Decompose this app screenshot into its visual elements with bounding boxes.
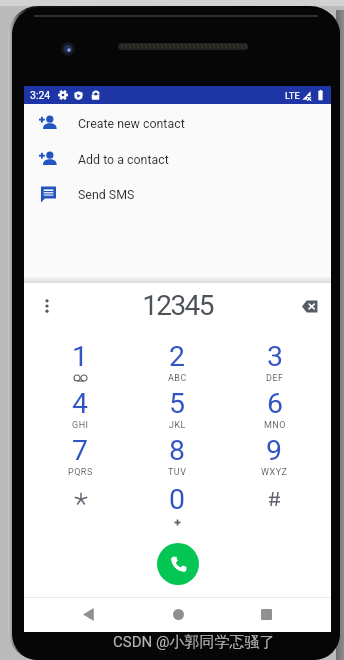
staticText: WXYZ <box>261 467 288 478</box>
staticText: ABC <box>168 373 187 384</box>
staticText: 3 <box>267 340 284 373</box>
button[interactable]: Backspace <box>290 287 328 325</box>
staticText: 1 <box>72 340 89 373</box>
staticText: Add to a contact <box>78 152 169 167</box>
staticText: PQRS <box>68 467 93 478</box>
button[interactable]: 0 <box>129 483 226 527</box>
button[interactable]: Recents <box>246 597 286 632</box>
button[interactable]: Call <box>157 543 199 585</box>
staticText: TUV <box>168 467 187 478</box>
button[interactable]: Send SMS <box>24 182 331 206</box>
button[interactable]: 6 <box>226 387 323 431</box>
button[interactable]: Create new contact <box>24 111 331 135</box>
button[interactable]: 7 <box>32 434 129 478</box>
staticText: 2 <box>169 340 186 373</box>
staticText: 7 <box>72 434 89 467</box>
staticText: 4 <box>72 387 89 420</box>
button[interactable]: 5 <box>129 387 226 431</box>
button[interactable]: More options <box>30 289 64 323</box>
button[interactable]: 2 <box>129 340 226 384</box>
button[interactable]: 9 <box>226 434 323 478</box>
button[interactable]: Back <box>68 597 108 632</box>
button[interactable] <box>32 483 129 527</box>
staticText: 3:24 <box>30 89 51 101</box>
staticText: MNO <box>264 420 286 431</box>
button[interactable]: Add to a contact <box>24 147 331 171</box>
staticText: Send SMS <box>78 187 135 202</box>
staticText: GHI <box>72 420 89 431</box>
staticText: 12345 <box>142 289 213 322</box>
staticText: LTE <box>285 90 300 101</box>
staticText: 6 <box>267 387 284 420</box>
staticText: JKL <box>169 420 186 431</box>
button[interactable]: 1 <box>32 340 129 384</box>
button[interactable]: 8 <box>129 434 226 478</box>
button[interactable] <box>226 483 323 527</box>
staticText: 8 <box>169 434 186 467</box>
staticText: 5 <box>169 387 186 420</box>
button[interactable]: 3 <box>226 340 323 384</box>
button[interactable]: Home <box>158 597 198 632</box>
staticText: Create new contact <box>78 116 185 131</box>
staticText: DEF <box>266 373 284 384</box>
staticText: CSDN @小郭同学忑骚了 <box>113 633 275 652</box>
staticText: 9 <box>266 434 283 467</box>
button[interactable]: 4 <box>32 387 129 431</box>
staticText: 0 <box>169 483 186 516</box>
